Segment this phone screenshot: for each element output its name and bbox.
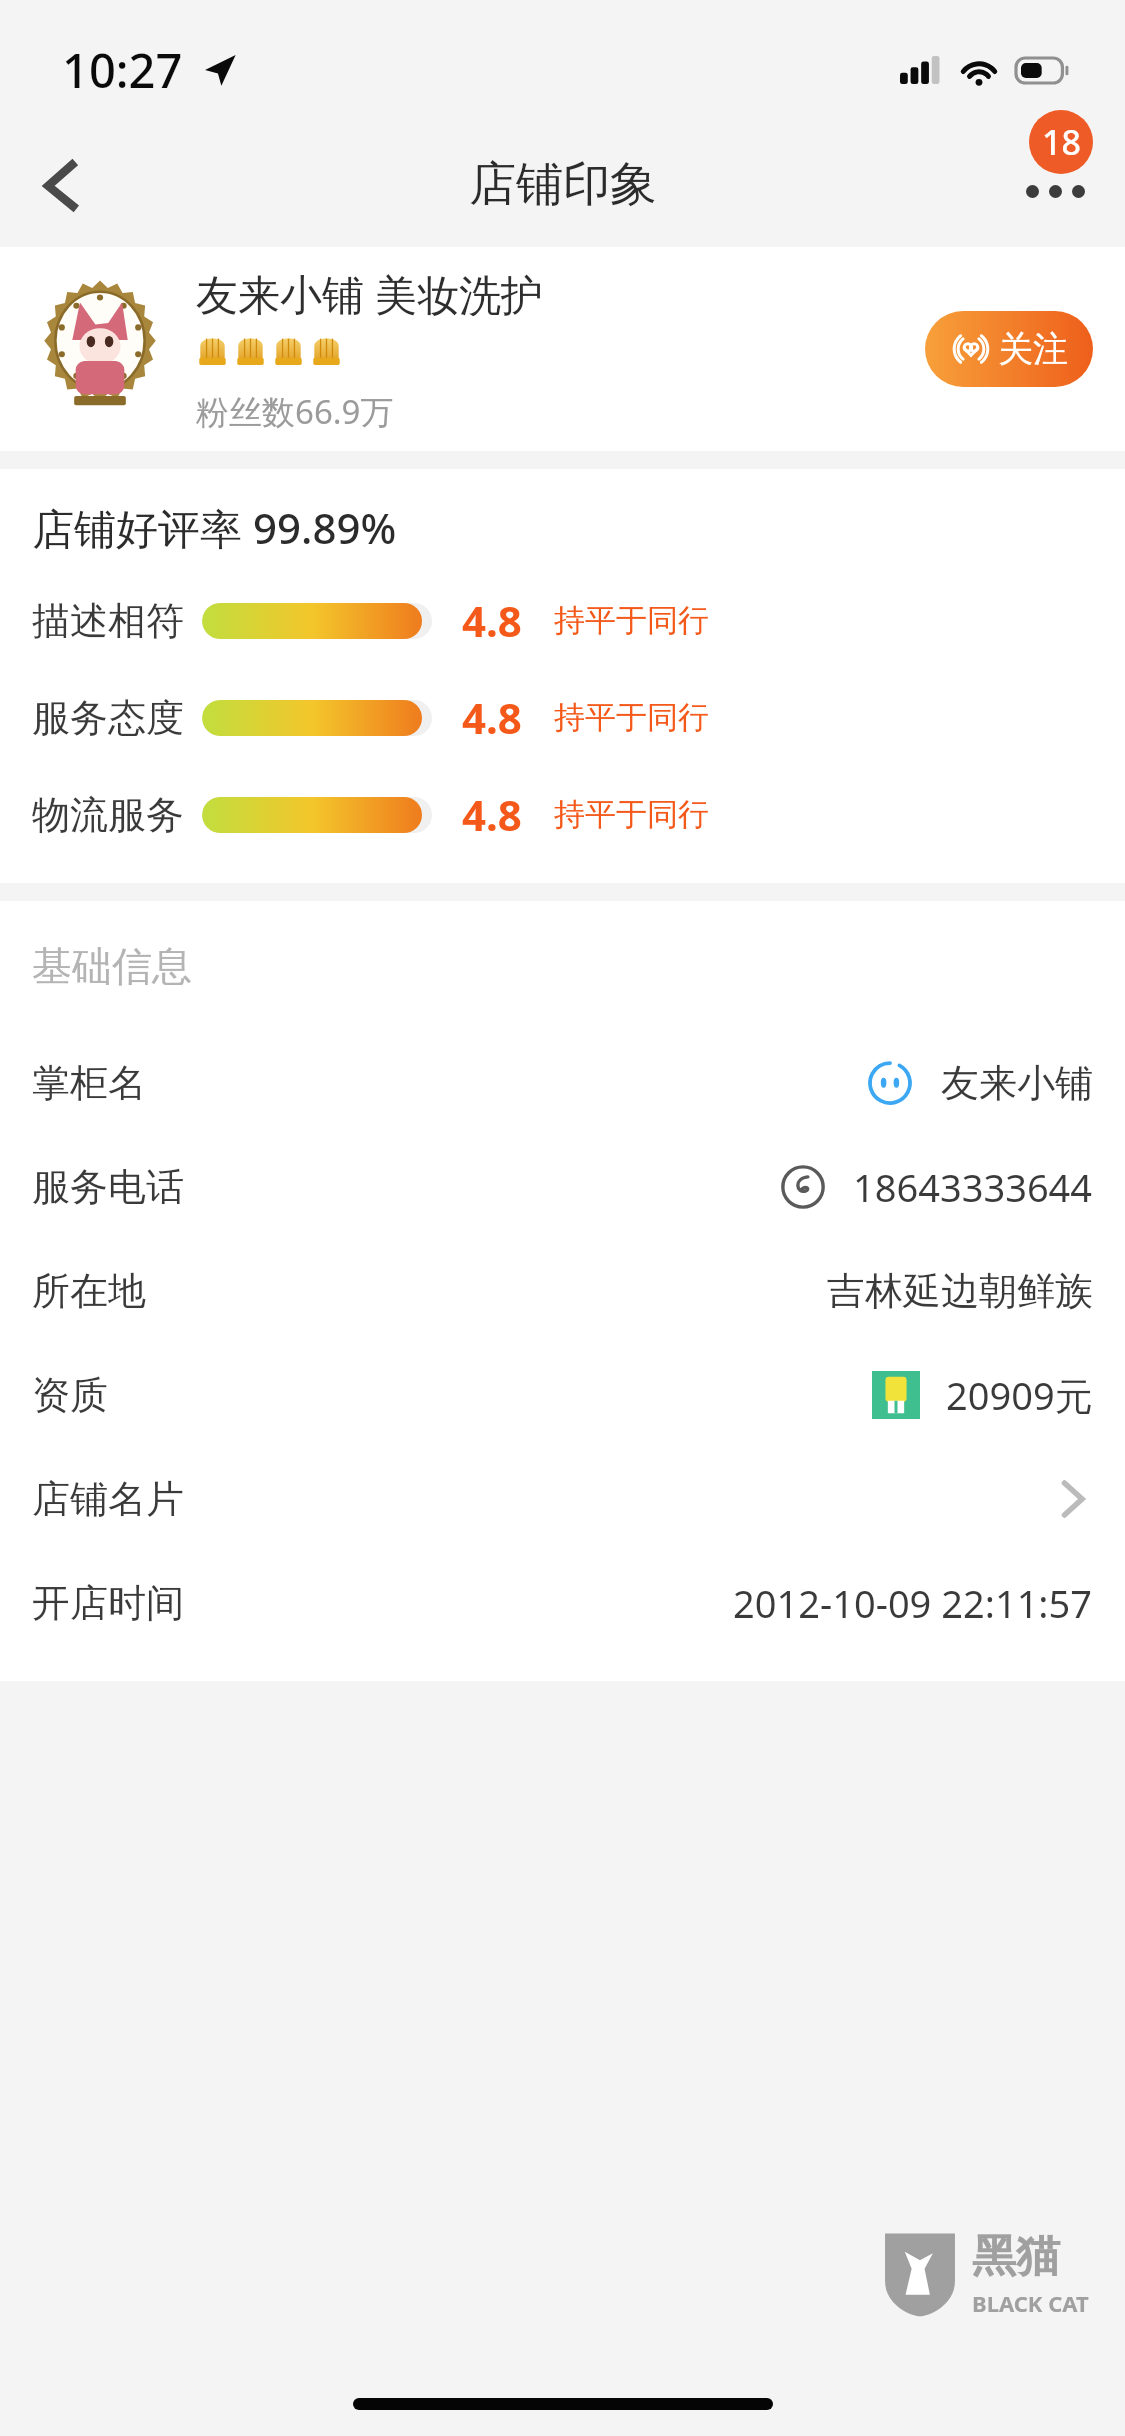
button[interactable]: 所在地	[32, 1239, 1093, 1343]
staticText: 吉林延边朝鲜族	[827, 1267, 1093, 1315]
button[interactable]: 描述相符	[32, 592, 1093, 649]
staticText: 4.8	[462, 592, 522, 649]
button[interactable]: 开店时间	[32, 1551, 1093, 1655]
staticText: 资质	[32, 1371, 108, 1419]
button[interactable]: 店铺名片	[32, 1447, 1093, 1551]
staticText: 持平于同行	[554, 698, 709, 737]
button[interactable]: 服务态度	[32, 689, 1093, 746]
button[interactable]: Back	[14, 137, 110, 233]
staticText: 店铺好评率 99.89%	[32, 499, 397, 556]
staticText: 掌柜名	[32, 1059, 146, 1107]
staticText: 基础信息	[32, 941, 192, 991]
button[interactable]: 掌柜名	[32, 1031, 1093, 1135]
staticText: 18643333644	[853, 1161, 1093, 1213]
staticText: 关注	[998, 327, 1068, 371]
button[interactable]: 服务电话	[32, 1135, 1093, 1239]
staticText: 物流服务	[32, 791, 202, 839]
staticText: 店铺名片	[32, 1475, 184, 1523]
button[interactable]: 物流服务	[32, 786, 1093, 843]
staticText: 粉丝数66.9万	[196, 389, 394, 434]
staticText: 持平于同行	[554, 795, 709, 834]
staticText: 服务电话	[32, 1163, 184, 1211]
staticText: 18	[1042, 119, 1081, 165]
button[interactable]: 资质	[32, 1343, 1093, 1447]
staticText: 友来小铺	[941, 1059, 1093, 1107]
staticText: 友来小铺 美妆洗护	[196, 265, 543, 322]
staticText: 10:27	[62, 38, 183, 102]
staticText: 持平于同行	[554, 601, 709, 640]
button[interactable]: 关注	[925, 311, 1093, 387]
button[interactable]: More options	[1007, 137, 1103, 233]
staticText: 4.8	[462, 786, 522, 843]
staticText: 描述相符	[32, 597, 202, 645]
staticText: 20909元	[946, 1369, 1093, 1421]
staticText: 所在地	[32, 1267, 146, 1315]
staticText: 店铺印象	[469, 155, 657, 214]
staticText: 2012-10-09 22:11:57	[733, 1577, 1093, 1629]
staticText: 开店时间	[32, 1579, 184, 1627]
staticText: 4.8	[462, 689, 522, 746]
staticText: 黑猫	[972, 2229, 1060, 2284]
staticText: 服务态度	[32, 694, 202, 742]
button[interactable]: 友来小铺 美妆洗护	[0, 247, 1125, 451]
staticText: BLACK CAT	[972, 2288, 1089, 2318]
